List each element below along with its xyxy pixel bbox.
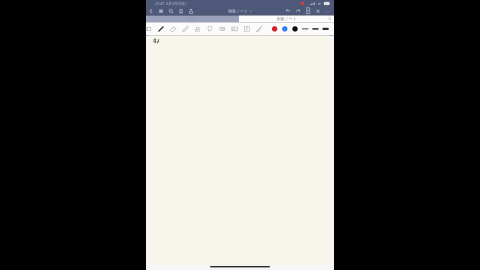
button[interactable]: Image <box>228 22 241 36</box>
button[interactable]: Thin stroke <box>300 22 310 36</box>
button[interactable]: Ruler <box>253 22 265 36</box>
button[interactable]: Black <box>290 22 300 36</box>
button[interactable]: Search <box>166 7 176 15</box>
button[interactable]: Thick stroke <box>320 22 331 36</box>
button[interactable]: Highlighter <box>179 22 191 36</box>
button[interactable]: Pen <box>155 22 167 36</box>
button[interactable]: Bold <box>303 7 313 15</box>
button[interactable]: Select <box>142 22 155 36</box>
button[interactable]: Stamp <box>191 22 204 36</box>
button[interactable]: Medium stroke <box>310 22 320 36</box>
button[interactable]: Text box <box>241 22 253 36</box>
button[interactable]: 手書き <box>146 15 239 22</box>
button[interactable]: Redo <box>293 7 303 15</box>
button[interactable]: Shapes <box>216 22 228 36</box>
button[interactable]: Eraser <box>167 22 179 36</box>
button[interactable]: Share <box>186 7 196 15</box>
button[interactable]: 測量ノート <box>228 7 252 15</box>
button[interactable]: Close <box>313 7 323 15</box>
button[interactable]: Thumbnails <box>156 7 166 15</box>
button[interactable]: Blue <box>280 22 290 36</box>
button[interactable]: Undo <box>283 7 293 15</box>
button[interactable]: More <box>323 7 333 15</box>
staticText: 測量ノート <box>276 16 296 21</box>
button[interactable]: Red <box>269 22 280 36</box>
staticText: 測量ノート <box>228 9 248 14</box>
staticText: 21:47 6月27日(木) <box>155 1 186 6</box>
button[interactable]: Lasso <box>204 22 216 36</box>
button[interactable]: Back <box>146 7 156 15</box>
button[interactable]: Bookmarks <box>176 7 186 15</box>
button[interactable]: 測量ノート <box>239 15 334 22</box>
staticText: B <box>305 6 310 16</box>
